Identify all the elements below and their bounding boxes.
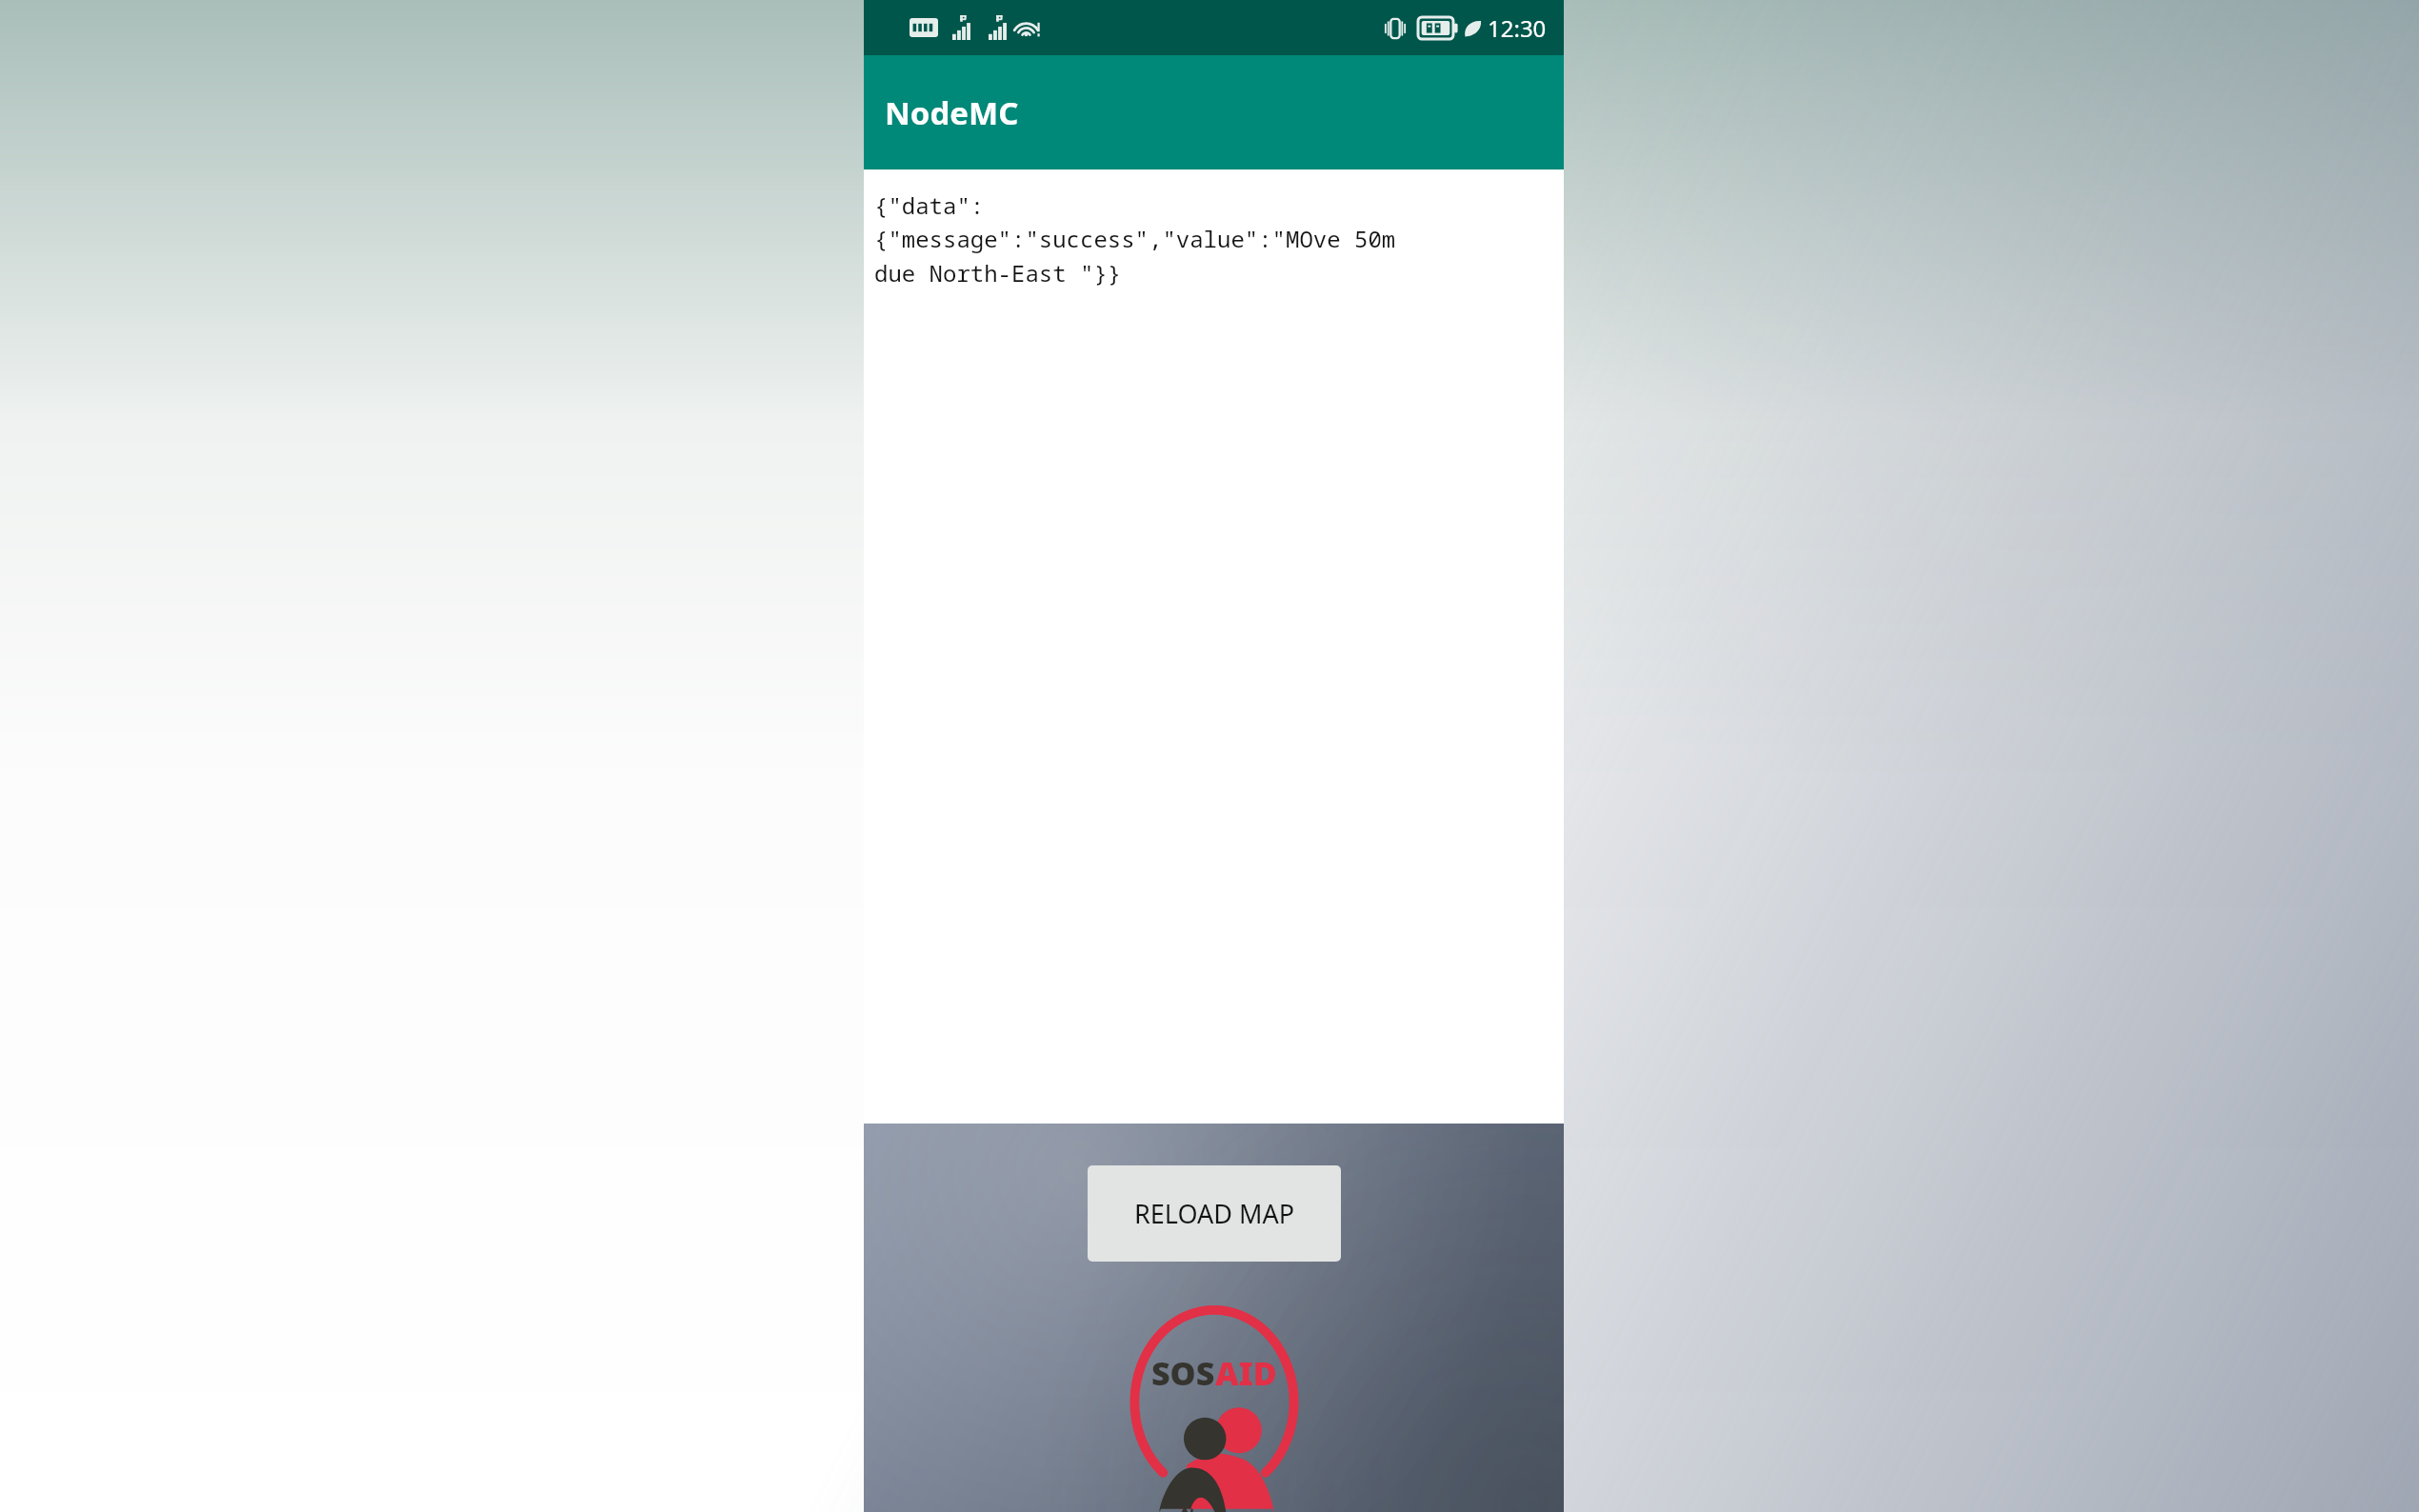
staticText: 12:30 bbox=[1488, 12, 1547, 44]
staticText: NodeMC bbox=[885, 91, 1019, 134]
staticText: RELOAD MAP bbox=[1134, 1196, 1295, 1231]
staticText: {"data": {"message":"success","value":"M… bbox=[874, 189, 1396, 288]
button[interactable]: RELOAD MAP bbox=[1088, 1165, 1341, 1262]
staticText: SOS bbox=[1151, 1351, 1215, 1395]
staticText: AID bbox=[1215, 1351, 1277, 1395]
